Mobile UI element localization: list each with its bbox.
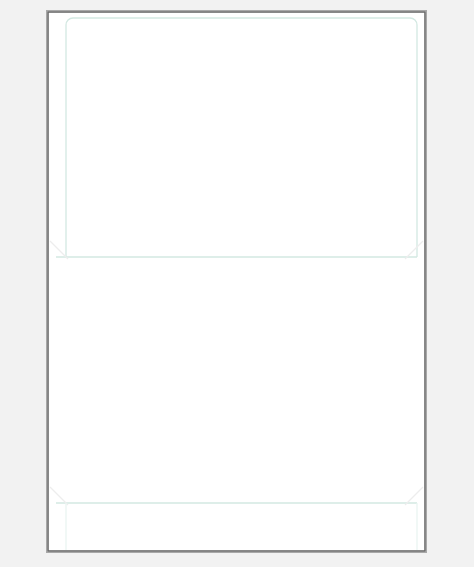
button[interactable]: Content <box>48 257 425 503</box>
button[interactable]: Bottom navigation <box>48 503 425 551</box>
button[interactable]: Header <box>48 12 425 257</box>
